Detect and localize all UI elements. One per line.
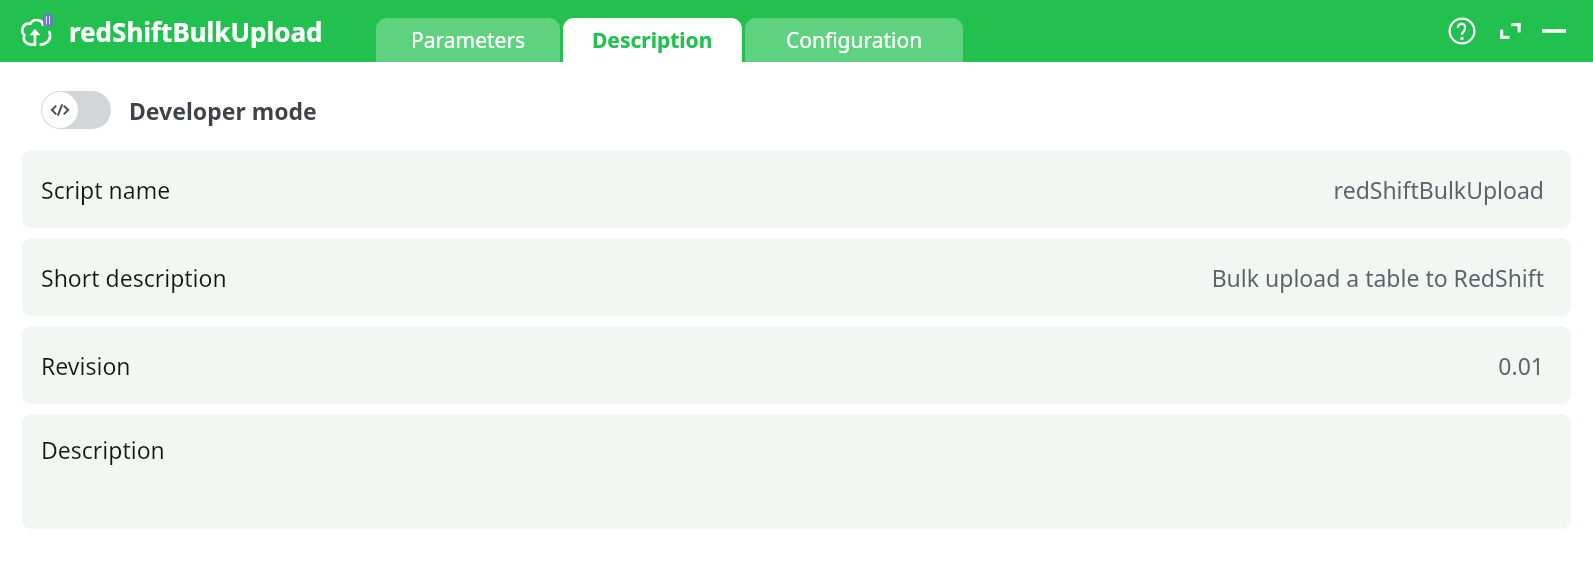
button[interactable]: Description bbox=[22, 414, 1571, 529]
staticText: Developer mode bbox=[129, 95, 317, 126]
staticText: Short description bbox=[41, 262, 227, 293]
button[interactable]: Parameters bbox=[376, 18, 560, 62]
staticText: Parameters bbox=[411, 26, 526, 55]
staticText: redShiftBulkUpload bbox=[1333, 174, 1544, 205]
button[interactable]: Help bbox=[1445, 14, 1479, 48]
button[interactable]: Minimize bbox=[1537, 14, 1571, 48]
staticText: 0.01 bbox=[1498, 350, 1544, 381]
staticText: Configuration bbox=[786, 26, 923, 55]
button[interactable]: Configuration bbox=[745, 18, 963, 62]
button[interactable]: Description bbox=[563, 18, 742, 62]
button[interactable]: Expand bbox=[1491, 14, 1525, 48]
button[interactable]: Short description bbox=[22, 238, 1571, 316]
staticText: Description bbox=[41, 434, 165, 465]
button[interactable]: Developer mode bbox=[41, 91, 317, 129]
button[interactable]: Revision bbox=[22, 326, 1571, 404]
staticText: Description bbox=[592, 26, 713, 55]
staticText: Revision bbox=[41, 350, 131, 381]
staticText: Script name bbox=[41, 174, 171, 205]
button[interactable]: Script name bbox=[22, 150, 1571, 228]
staticText: Bulk upload a table to RedShift bbox=[1211, 262, 1544, 293]
staticText: redShiftBulkUpload bbox=[69, 14, 323, 49]
